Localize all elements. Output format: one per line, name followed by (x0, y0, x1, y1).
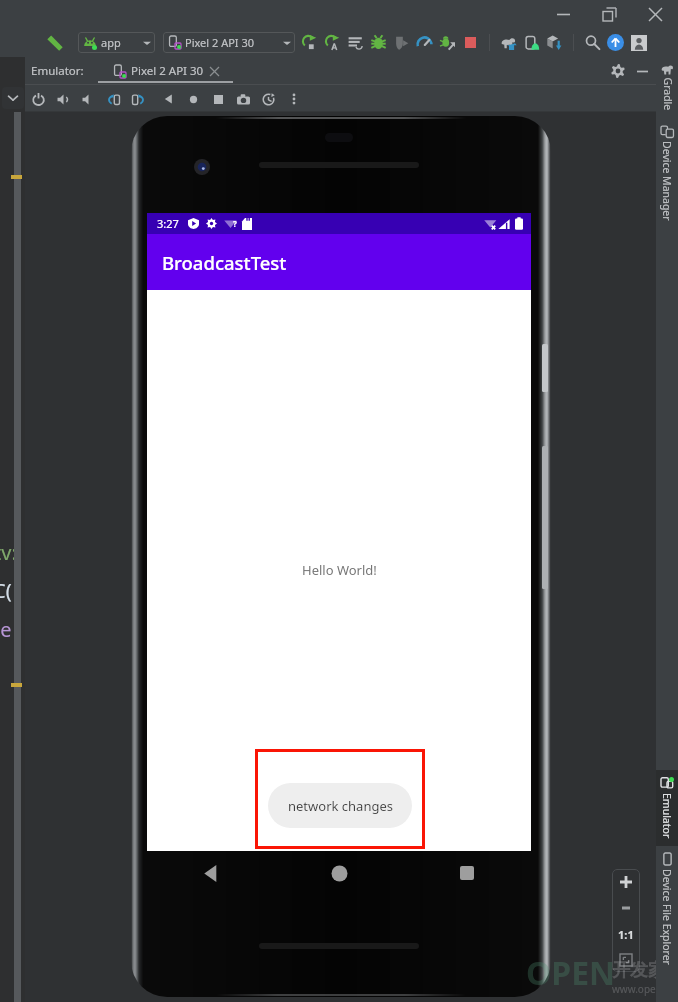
staticText: Emulator: (31, 63, 84, 79)
button[interactable]: Zoom out (612, 895, 640, 921)
button[interactable]: Close (632, 0, 678, 28)
button[interactable]: Overview (206, 87, 231, 111)
button[interactable]: Volume up (51, 87, 76, 111)
staticText: Gradle (660, 77, 674, 110)
button[interactable]: Debug (367, 31, 390, 54)
button[interactable]: Actual size (612, 921, 640, 947)
button[interactable]: SDK manager (543, 31, 566, 54)
staticText: 1:1 (618, 927, 634, 942)
button[interactable]: Fit to screen (612, 947, 640, 972)
button[interactable]: Back (147, 851, 275, 895)
button[interactable]: Settings (606, 59, 630, 83)
staticText: Emulator (660, 793, 674, 839)
button[interactable]: Expand (2, 87, 24, 109)
button[interactable]: Home (275, 851, 403, 895)
button[interactable]: Attach debugger (390, 31, 413, 54)
staticText: Pixel 2 API 30 (185, 35, 255, 50)
button[interactable]: Run with coverage (321, 31, 344, 54)
button[interactable]: Back (156, 87, 181, 111)
button[interactable]: Emulator (656, 770, 678, 846)
staticText: ? (233, 218, 237, 229)
button[interactable]: AVD manager (520, 31, 543, 54)
button[interactable]: Device File Explorer (656, 846, 678, 972)
button[interactable]: Pixel 2 API 30 (163, 32, 295, 53)
staticText: Hello World! (302, 561, 377, 579)
button[interactable]: Zoom in (612, 869, 640, 895)
staticText: www.openjq.com (612, 982, 678, 996)
button[interactable]: Stop (459, 31, 482, 54)
staticText: BroadcastTest (162, 250, 287, 275)
staticText: Pixel 2 API 30 (131, 63, 204, 79)
button[interactable]: Gradle (656, 57, 678, 118)
button[interactable]: Pixel 2 API 30 (98, 57, 233, 85)
staticText: tv: (0, 539, 17, 566)
button[interactable]: Maximize (586, 0, 632, 28)
button[interactable]: History (256, 87, 281, 111)
button[interactable]: Device Manager (656, 118, 678, 228)
button[interactable]: Profiler (413, 31, 436, 54)
button[interactable]: network changes (268, 783, 412, 828)
button[interactable]: Search (581, 31, 604, 54)
button[interactable]: Power (26, 87, 51, 111)
button[interactable]: Account (627, 31, 650, 54)
button[interactable]: Hide (630, 59, 654, 83)
button[interactable]: Screenshot (231, 87, 256, 111)
button[interactable]: Recent apps (403, 851, 531, 895)
button[interactable]: Rotate right (126, 87, 151, 111)
button[interactable]: Update (604, 31, 627, 54)
button[interactable]: Rotate left (101, 87, 126, 111)
staticText: 3:27 (157, 216, 179, 231)
staticText: app (101, 35, 121, 50)
button[interactable]: Profile (436, 31, 459, 54)
button[interactable]: Home (181, 87, 206, 111)
staticText: 开发家园 (612, 959, 678, 982)
staticText: Device File Explorer (660, 869, 674, 965)
button[interactable]: Apply changes (344, 31, 367, 54)
staticText: OPEN (526, 951, 616, 995)
staticText: C( (0, 577, 12, 604)
button[interactable]: Run (298, 31, 321, 54)
button[interactable]: app (78, 32, 155, 53)
button[interactable]: Minimize (540, 0, 586, 28)
staticText: network changes (288, 797, 393, 815)
button[interactable]: More (281, 87, 306, 111)
button[interactable]: Build (45, 33, 65, 53)
button[interactable]: Sync gradle (497, 31, 520, 54)
button[interactable]: Volume down (76, 87, 101, 111)
staticText: te (0, 616, 12, 643)
staticText: Device Manager (660, 141, 674, 221)
